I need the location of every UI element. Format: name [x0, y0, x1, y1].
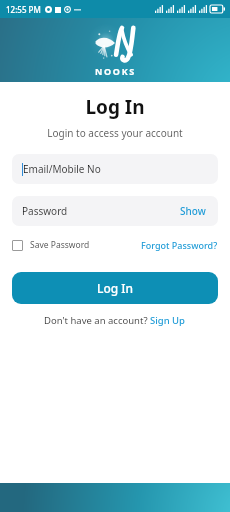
staticText: Sign Up — [150, 314, 186, 327]
button[interactable]: Don't have an account? — [44, 314, 186, 327]
staticText: 12:55 PM — [6, 4, 41, 15]
button[interactable]: Show — [178, 199, 208, 223]
staticText: Forgot Password? — [141, 239, 218, 251]
button[interactable]: Forgot Password? — [141, 236, 218, 254]
staticText: Save Password — [30, 239, 90, 251]
staticText: Email/Mobile No — [23, 162, 101, 176]
staticText: Show — [180, 204, 206, 218]
staticText: Log In — [12, 94, 218, 120]
staticText: Login to access your account — [12, 126, 218, 140]
button[interactable]: Log In — [12, 272, 218, 304]
button[interactable]: Save Password — [12, 236, 90, 254]
button[interactable]: Email/Mobile No — [12, 154, 218, 184]
other: Bottom decorative bar — [0, 483, 230, 512]
staticText: Log In — [97, 280, 134, 296]
staticText: NOOKS — [95, 65, 136, 77]
staticText: Don't have an account? — [44, 314, 150, 327]
button[interactable]: Password — [12, 196, 218, 226]
staticText: Password — [22, 204, 68, 218]
